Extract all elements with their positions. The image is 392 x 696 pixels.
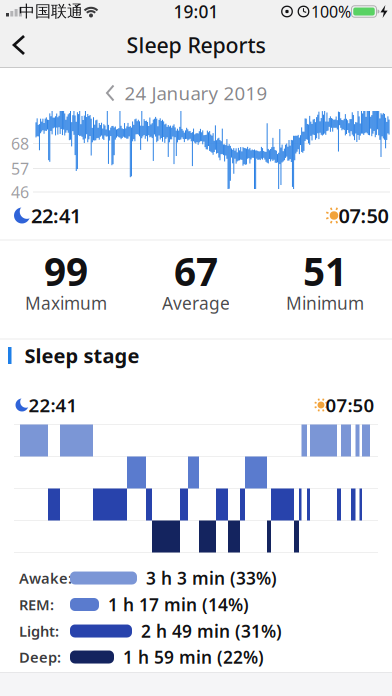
staticText: 24 January 2019 xyxy=(124,81,267,105)
staticText: Deep: xyxy=(19,647,61,667)
staticText: 3 h 3 min (33%) xyxy=(146,566,277,589)
staticText: 99 xyxy=(44,245,88,297)
staticText: 中国联通 xyxy=(19,2,83,21)
button[interactable]: 24 January 2019 xyxy=(92,79,300,107)
staticText: Sleep stage xyxy=(24,342,139,369)
staticText: Minimum xyxy=(286,291,364,314)
staticText: 67 xyxy=(174,245,218,297)
staticText: 1 h 17 min (14%) xyxy=(108,593,249,616)
staticText: 46 xyxy=(11,181,29,203)
staticText: Average xyxy=(162,291,230,314)
staticText: 22:41 xyxy=(28,393,77,417)
staticText: 100% xyxy=(311,1,351,22)
staticText: 19:01 xyxy=(173,0,218,23)
staticText: 68 xyxy=(11,133,29,154)
staticText: Maximum xyxy=(25,291,107,314)
staticText: REM: xyxy=(19,595,54,614)
staticText: 22:41 xyxy=(31,202,81,229)
staticText: 57 xyxy=(11,158,29,179)
staticText: Awake: xyxy=(19,568,72,588)
staticText: 07:50 xyxy=(325,393,374,417)
button[interactable] xyxy=(0,23,44,67)
staticText: 1 h 59 min (22%) xyxy=(123,645,264,668)
staticText: 2 h 49 min (31%) xyxy=(141,619,282,642)
staticText: 07:50 xyxy=(338,202,388,229)
staticText: 51 xyxy=(303,245,347,297)
staticText: Sleep Reports xyxy=(126,31,265,59)
staticText: Light: xyxy=(19,621,59,641)
